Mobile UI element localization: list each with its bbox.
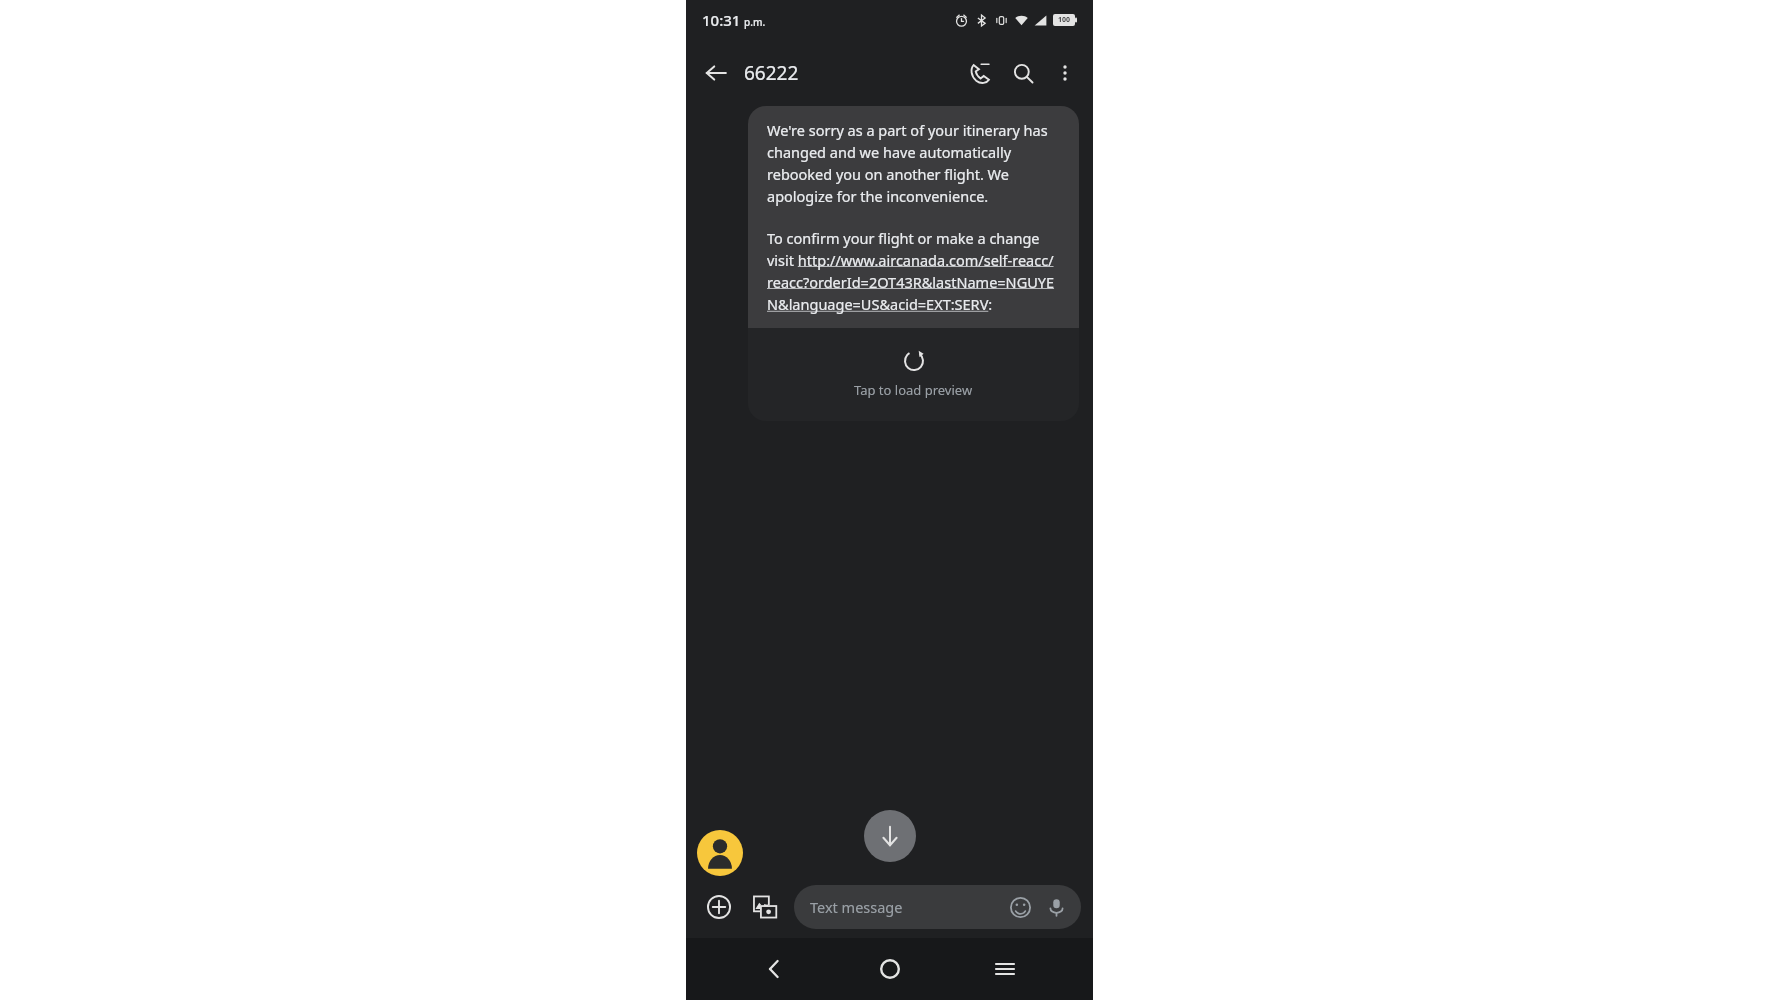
button[interactable]: Voice message	[1039, 890, 1073, 924]
staticText: 100	[1058, 15, 1071, 25]
staticText: Text message	[810, 897, 903, 917]
button[interactable]: Send picture	[744, 886, 786, 928]
staticText: We're sorry as a part of your itinerary …	[767, 120, 1060, 206]
button[interactable]: Call	[957, 51, 1001, 95]
staticText: Tap to load preview	[854, 381, 973, 399]
button[interactable]: Text message	[794, 885, 1081, 929]
button[interactable]: Add attachment	[698, 886, 740, 928]
button[interactable]: Back	[694, 51, 738, 95]
button[interactable]: We're sorry as a part of your itinerary …	[748, 106, 1079, 421]
button[interactable]: Search	[1001, 51, 1045, 95]
staticText: 10:31	[702, 10, 741, 30]
staticText: To confirm your flight or make a change …	[767, 228, 1060, 314]
staticText: p.m.	[744, 15, 766, 29]
button[interactable]	[697, 830, 743, 876]
staticText: 66222	[744, 60, 799, 86]
button[interactable]: Back	[746, 941, 802, 997]
button[interactable]: More options	[1045, 53, 1085, 93]
button[interactable]: Emoji	[1003, 890, 1037, 924]
button[interactable]: Scroll to bottom	[864, 810, 916, 862]
button[interactable]: Recent apps	[977, 941, 1033, 997]
button[interactable]: Home	[862, 941, 918, 997]
